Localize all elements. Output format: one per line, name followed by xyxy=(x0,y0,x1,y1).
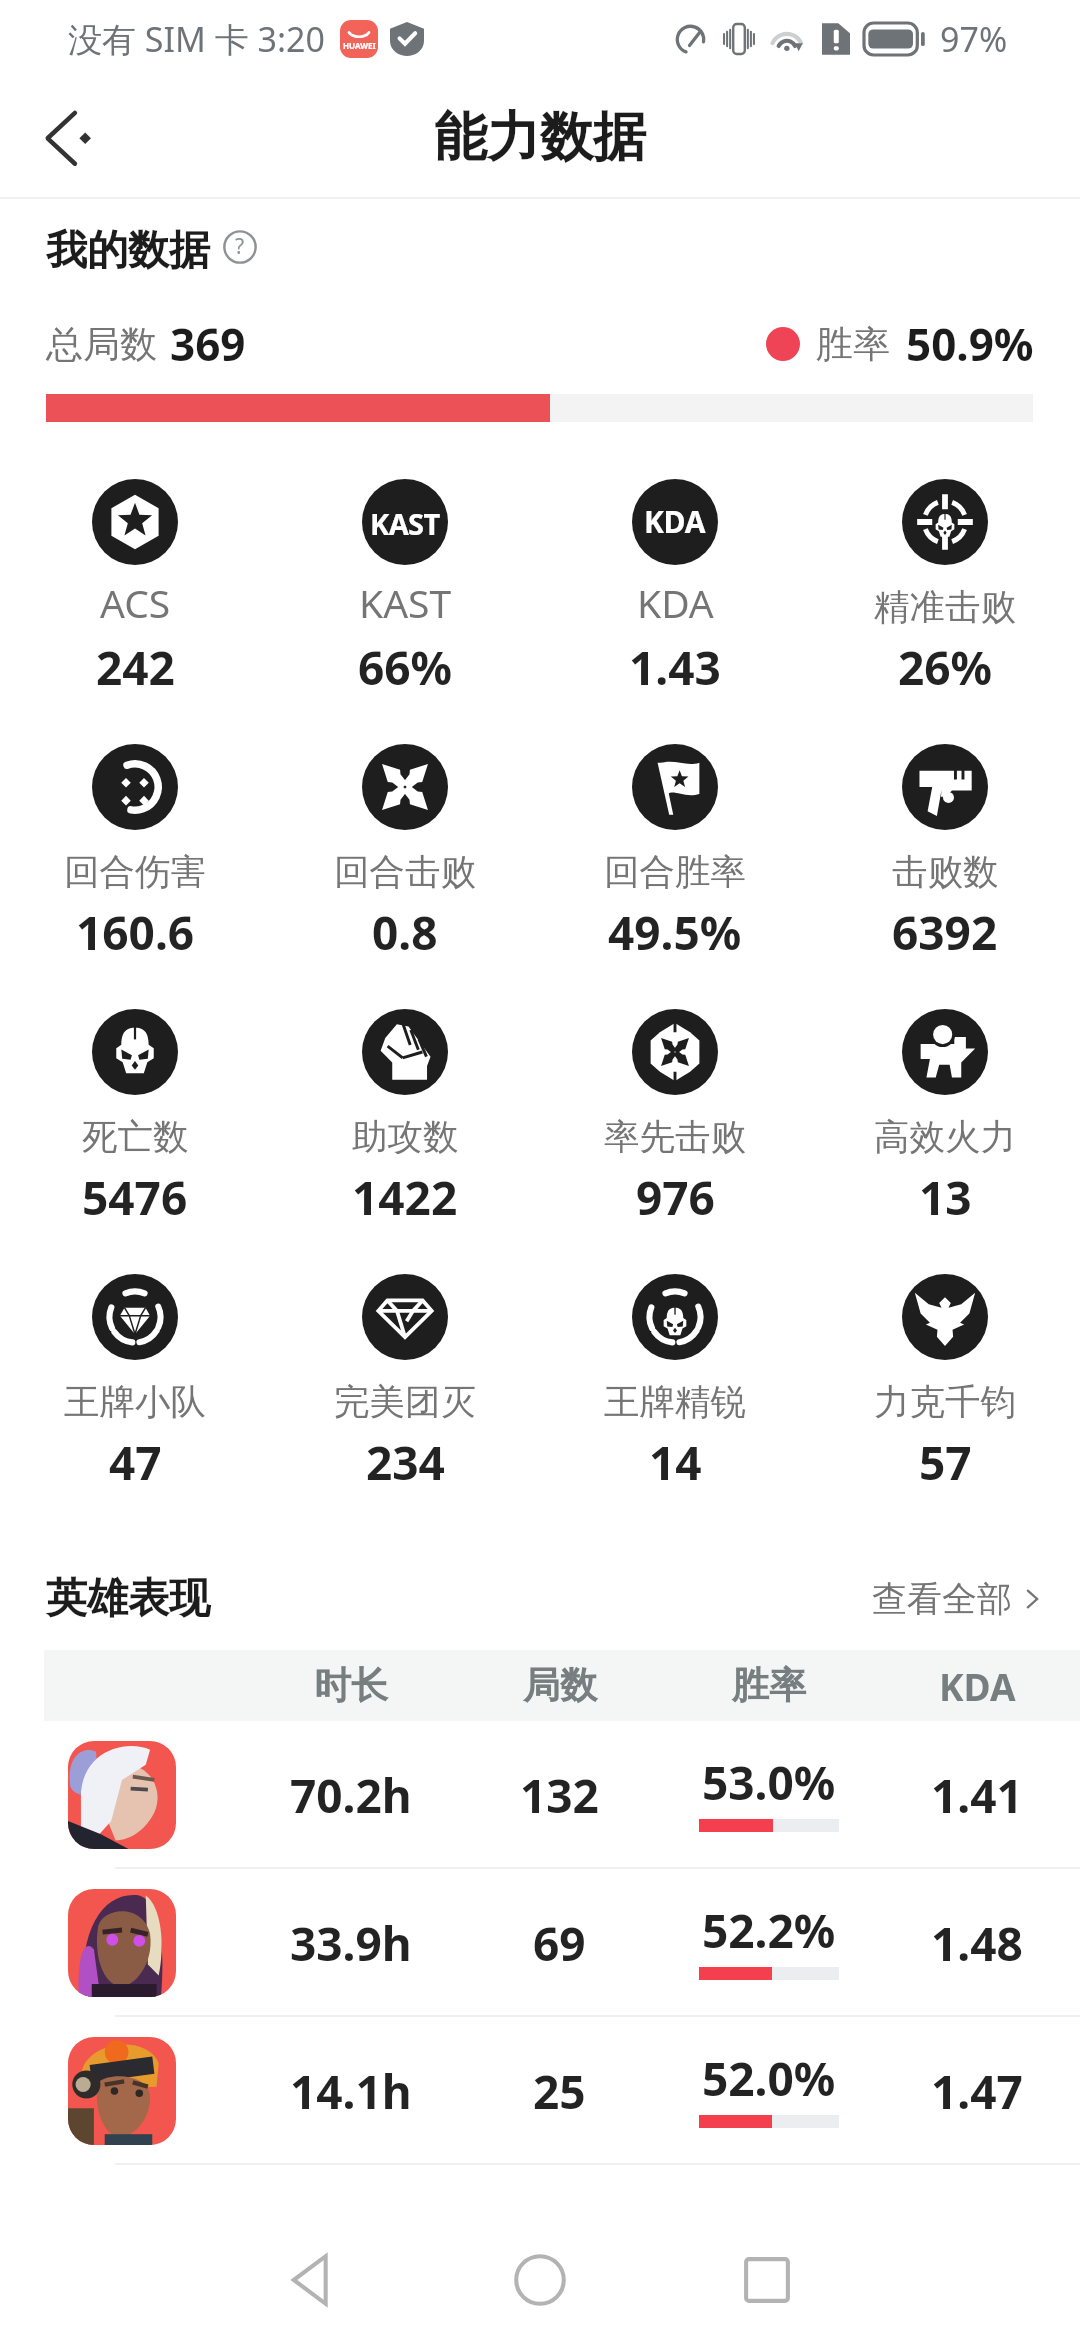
button[interactable]: Back xyxy=(24,92,116,184)
staticText: 52.0% xyxy=(702,2047,836,2110)
staticText: 我的数据 xyxy=(46,225,210,277)
staticText: 率先击败 xyxy=(604,1115,746,1160)
staticText: 0.8 xyxy=(372,901,438,963)
staticText: 14 xyxy=(649,1431,702,1493)
staticText: 26% xyxy=(898,636,993,698)
staticText: 查看全部 xyxy=(872,1577,1012,1621)
button[interactable]: 70.2h xyxy=(0,1721,1080,1869)
staticText: 369 xyxy=(170,314,246,374)
staticText: 52.2% xyxy=(702,1899,836,1962)
button[interactable]: Recents xyxy=(719,2232,815,2328)
staticText: 高效火力 xyxy=(874,1115,1016,1160)
staticText: 47 xyxy=(109,1431,162,1493)
staticText: 132 xyxy=(520,1764,599,1827)
button[interactable]: 高效火力 xyxy=(810,1009,1080,1274)
button[interactable]: 回合击败 xyxy=(270,744,540,1009)
staticText: ? xyxy=(235,232,245,261)
staticText: 完美团灭 xyxy=(334,1380,476,1425)
staticText: 5476 xyxy=(82,1166,188,1228)
button[interactable]: 王牌精锐 xyxy=(540,1274,810,1539)
staticText: 57 xyxy=(919,1431,972,1493)
staticText: 时长 xyxy=(314,1662,388,1709)
staticText: 97% xyxy=(940,16,1008,62)
staticText: 234 xyxy=(366,1431,445,1493)
staticText: 助攻数 xyxy=(352,1115,459,1160)
staticText: 6392 xyxy=(892,901,998,963)
button[interactable]: 率先击败 xyxy=(540,1009,810,1274)
button[interactable]: KAST xyxy=(270,479,540,744)
staticText: 局数 xyxy=(523,1662,597,1709)
button[interactable]: 回合伤害 xyxy=(0,744,270,1009)
staticText: 回合伤害 xyxy=(64,850,206,895)
staticText: 70.2h xyxy=(290,1764,412,1827)
staticText: 69 xyxy=(533,1912,586,1975)
button[interactable]: 击败数 xyxy=(810,744,1080,1009)
button[interactable]: 精准击败 xyxy=(810,479,1080,744)
staticText: 1.48 xyxy=(931,1912,1023,1975)
staticText: KDA xyxy=(637,576,714,629)
staticText: 14.1h xyxy=(290,2060,412,2123)
button[interactable]: 力克千钧 xyxy=(810,1274,1080,1539)
staticText: 50.9% xyxy=(906,314,1034,374)
staticText: 胜率 xyxy=(732,1662,806,1709)
button[interactable]: KDA xyxy=(540,479,810,744)
button[interactable]: 完美团灭 xyxy=(270,1274,540,1539)
button[interactable]: 助攻数 xyxy=(270,1009,540,1274)
button[interactable]: ACS xyxy=(0,479,270,744)
staticText: 回合胜率 xyxy=(604,850,746,895)
staticText: 25 xyxy=(533,2060,586,2123)
staticText: 英雄表现 xyxy=(46,1573,210,1625)
staticText: KAST xyxy=(370,504,440,543)
staticText: 1.43 xyxy=(629,636,721,698)
button[interactable]: 王牌小队 xyxy=(0,1274,270,1539)
staticText: 49.5% xyxy=(608,901,742,963)
staticText: 13 xyxy=(919,1166,972,1228)
staticText: HUAWEI xyxy=(343,40,376,51)
staticText: 胜率 xyxy=(816,321,890,368)
staticText: 没有 SIM 卡 3:20 xyxy=(68,16,326,62)
staticText: 王牌小队 xyxy=(64,1380,206,1425)
button[interactable]: Back xyxy=(262,2232,358,2328)
staticText: 能力数据 xyxy=(434,104,646,171)
staticText: 总局数 xyxy=(46,321,157,368)
staticText: 1422 xyxy=(352,1166,458,1228)
staticText: 死亡数 xyxy=(82,1115,189,1160)
staticText: 击败数 xyxy=(892,850,999,895)
staticText: 回合击败 xyxy=(334,850,476,895)
staticText: KAST xyxy=(359,576,452,629)
button[interactable]: 14.1h xyxy=(0,2017,1080,2165)
button[interactable]: 死亡数 xyxy=(0,1009,270,1274)
staticText: 160.6 xyxy=(76,901,195,963)
button[interactable]: 33.9h xyxy=(0,1869,1080,2017)
button[interactable]: Help xyxy=(223,230,257,264)
button[interactable]: 查看全部 xyxy=(872,1577,1046,1621)
staticText: 242 xyxy=(96,636,175,698)
staticText: ACS xyxy=(100,576,171,629)
staticText: 力克千钧 xyxy=(874,1380,1016,1425)
staticText: 976 xyxy=(636,1166,715,1228)
staticText: 1.47 xyxy=(931,2060,1023,2123)
staticText: 33.9h xyxy=(290,1912,412,1975)
staticText: 66% xyxy=(358,636,453,698)
staticText: 王牌精锐 xyxy=(604,1380,746,1425)
staticText: 1.41 xyxy=(931,1764,1023,1827)
staticText: KDA xyxy=(939,1661,1016,1711)
staticText: KDA xyxy=(644,501,706,542)
button[interactable]: Home xyxy=(492,2232,588,2328)
staticText: 精准击败 xyxy=(874,585,1016,630)
button[interactable]: 回合胜率 xyxy=(540,744,810,1009)
staticText: 53.0% xyxy=(702,1751,836,1814)
